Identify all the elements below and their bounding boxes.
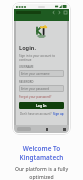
staticText: Sign up — [53, 112, 64, 116]
button[interactable]: Enter your username — [19, 70, 64, 77]
staticText: Our platform is a fully optimized platfo… — [3, 166, 80, 180]
staticText: Welcome To Kingtamatech — [3, 144, 80, 162]
staticText: Log In — [36, 103, 47, 108]
button[interactable]: Back — [52, 11, 55, 14]
button[interactable]: Menu — [64, 11, 67, 14]
button[interactable]: Forgot your password? — [19, 95, 52, 99]
staticText: Login. — [19, 44, 37, 52]
staticText: USERNAME — [19, 65, 34, 69]
staticText: Don't have an account? — [20, 112, 53, 116]
staticText: Forgot your password? — [19, 95, 52, 99]
staticText: Sign in to your account to continue — [19, 54, 64, 62]
staticText: PASSWORD — [19, 80, 34, 84]
staticText: Enter your password — [21, 87, 50, 91]
button[interactable]: Forward — [58, 11, 61, 14]
button[interactable]: Log In — [19, 102, 64, 109]
button[interactable]: Sign up — [53, 112, 64, 116]
staticText: Enter your username — [21, 72, 50, 76]
button[interactable]: Enter your password — [19, 85, 64, 92]
